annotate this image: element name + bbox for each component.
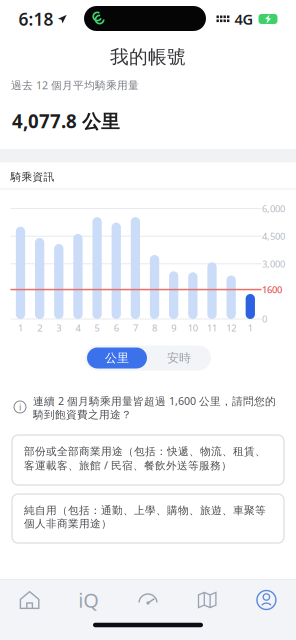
staticText: 3 (56, 322, 61, 334)
button[interactable]: Map (178, 580, 237, 620)
staticText: 10 (188, 322, 198, 334)
button[interactable]: iQ (59, 580, 118, 620)
staticText: 安時 (167, 351, 191, 365)
staticText: 1 (18, 322, 23, 334)
staticText: iQ (78, 587, 99, 613)
staticText: 12 (226, 322, 236, 334)
button[interactable]: Performance (118, 580, 178, 620)
staticText: 騎乘資訊 (10, 170, 54, 183)
button[interactable]: Account (237, 580, 296, 620)
staticText: 我的帳號 (110, 45, 186, 68)
staticText: 3,000 (262, 258, 285, 270)
staticText: 部份或全部商業用途（包括：快遞、物流、租賃、客運載客、旅館 / 民宿、餐飲外送等… (24, 445, 266, 472)
staticText: 1600 (262, 283, 282, 296)
button[interactable]: 部份或全部商業用途（包括：快遞、物流、租賃、客運載客、旅館 / 民宿、餐飲外送等… (12, 435, 284, 485)
staticText: 4,077.8 公里 (12, 109, 120, 133)
staticText: 連續 2 個月騎乘用量皆超過 1,600 公里，請問您的騎到飽資費之用途？ (33, 394, 276, 421)
staticText: 2 (37, 322, 42, 334)
staticText: 公里 (105, 351, 129, 365)
staticText: 11 (207, 322, 217, 334)
staticText: 6:18 (18, 7, 53, 30)
staticText: 6 (114, 322, 119, 334)
staticText: 純自用（包括：通勤、上學、購物、旅遊、車聚等個人非商業用途） (24, 504, 266, 530)
staticText: 0 (262, 313, 267, 325)
staticText: 4 (75, 322, 80, 334)
button[interactable]: 安時 (149, 347, 209, 368)
staticText: 5 (95, 322, 100, 334)
button[interactable]: 純自用（包括：通勤、上學、購物、旅遊、車聚等個人非商業用途） (12, 494, 284, 543)
staticText: 8 (152, 322, 157, 334)
staticText: 過去 12 個月平均騎乘用量 (11, 78, 139, 92)
staticText: i (19, 401, 21, 413)
button[interactable]: Home (0, 580, 59, 620)
staticText: 4,500 (262, 230, 285, 242)
staticText: 9 (171, 322, 176, 334)
staticText: 7 (133, 322, 138, 334)
button[interactable]: 公里 (87, 347, 147, 368)
staticText: 6,000 (262, 202, 285, 215)
staticText: 1 (248, 322, 253, 334)
staticText: 4G (234, 9, 253, 29)
